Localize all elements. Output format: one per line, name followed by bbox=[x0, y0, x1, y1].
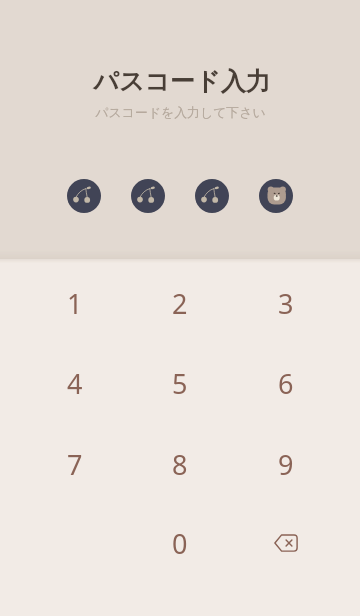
button[interactable]: 9 bbox=[246, 426, 326, 502]
button[interactable]: 0 bbox=[140, 505, 220, 581]
button[interactable]: 8 bbox=[140, 426, 220, 502]
button[interactable]: 7 bbox=[35, 426, 115, 502]
button[interactable]: 6 bbox=[246, 345, 326, 421]
button[interactable]: Passcode digit entered bbox=[195, 179, 229, 213]
button[interactable]: Passcode digit entered bbox=[259, 179, 293, 213]
button[interactable]: 4 bbox=[35, 345, 115, 421]
staticText: 2 bbox=[172, 285, 188, 322]
staticText: パスコードを入力して下さい bbox=[95, 105, 266, 121]
staticText: 8 bbox=[172, 446, 188, 483]
button[interactable]: 3 bbox=[246, 265, 326, 341]
staticText: 0 bbox=[172, 525, 188, 562]
button[interactable]: 2 bbox=[140, 265, 220, 341]
staticText: 7 bbox=[67, 446, 83, 483]
button[interactable]: 5 bbox=[140, 345, 220, 421]
staticText: 4 bbox=[67, 365, 83, 402]
button[interactable]: Passcode digit entered bbox=[67, 179, 101, 213]
staticText: パスコード入力 bbox=[93, 66, 271, 97]
staticText: 1 bbox=[67, 285, 83, 322]
button[interactable]: 1 bbox=[35, 265, 115, 341]
staticText: 3 bbox=[278, 285, 294, 322]
button[interactable]: Delete bbox=[262, 519, 310, 567]
button[interactable]: Delete bbox=[246, 505, 326, 581]
button[interactable]: Passcode digit entered bbox=[131, 179, 165, 213]
staticText: 6 bbox=[278, 365, 294, 402]
staticText: 9 bbox=[278, 446, 294, 483]
staticText: 5 bbox=[172, 365, 188, 402]
